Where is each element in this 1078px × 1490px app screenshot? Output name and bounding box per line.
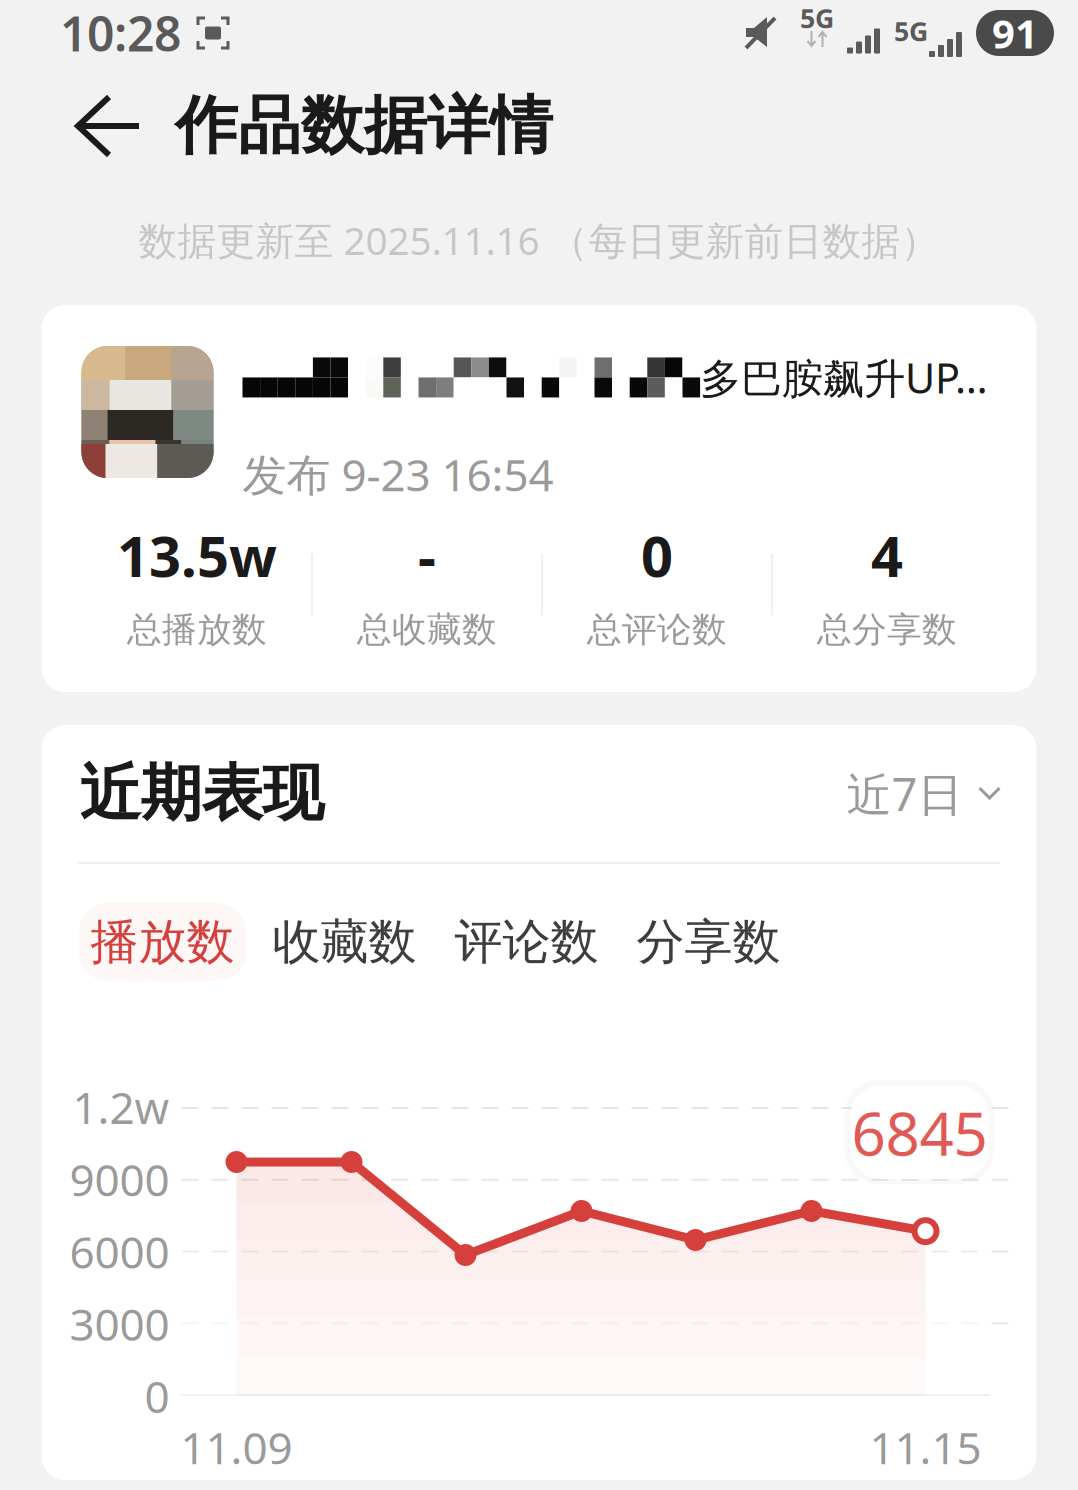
staticText: 4 <box>871 518 903 592</box>
staticText: 10:28 <box>60 1 181 65</box>
button[interactable]: 评论数 <box>442 903 610 981</box>
staticText: 评论数 <box>454 912 598 971</box>
staticText: 总播放数 <box>127 608 267 651</box>
staticText: 多巴胺飙升UP… <box>700 350 988 405</box>
staticText: 3000 <box>69 1294 169 1353</box>
staticText: 6000 <box>69 1222 169 1281</box>
staticText: 总收藏数 <box>357 608 497 651</box>
staticText: 总评论数 <box>587 608 727 651</box>
button[interactable]: 多巴胺飙升UP… <box>41 305 1036 692</box>
button[interactable]: 近7日 <box>846 758 1000 828</box>
staticText: 13.5w <box>117 518 277 592</box>
staticText: 91 <box>992 6 1038 59</box>
button[interactable]: 收藏数 <box>260 903 428 981</box>
staticText: 播放数 <box>90 912 234 971</box>
button[interactable]: 分享数 <box>624 903 792 981</box>
staticText: 5G <box>894 13 928 49</box>
staticText: 0 <box>641 518 673 592</box>
staticText: 作品数据详情 <box>175 87 553 164</box>
button[interactable]: 播放数 <box>78 903 246 981</box>
staticText: - <box>418 518 436 592</box>
staticText: 6845 <box>851 1093 987 1172</box>
staticText: 11.09 <box>180 1418 292 1476</box>
staticText: 近期表现 <box>79 756 323 831</box>
staticText: 5G <box>800 0 834 36</box>
staticText: 近7日 <box>846 763 962 824</box>
staticText: 1.2w <box>72 1078 169 1136</box>
button[interactable]: 返回 <box>45 76 171 176</box>
staticText: 总分享数 <box>817 608 957 651</box>
staticText: 数据更新至 2025.11.16 （每日更新前日数据） <box>138 214 939 266</box>
staticText: 分享数 <box>636 912 780 971</box>
staticText: 9000 <box>69 1150 169 1208</box>
staticText: 0 <box>144 1367 169 1425</box>
staticText: 收藏数 <box>272 912 416 971</box>
staticText: 11.15 <box>869 1418 981 1476</box>
staticText: 发布 9-23 16:54 <box>242 445 553 503</box>
